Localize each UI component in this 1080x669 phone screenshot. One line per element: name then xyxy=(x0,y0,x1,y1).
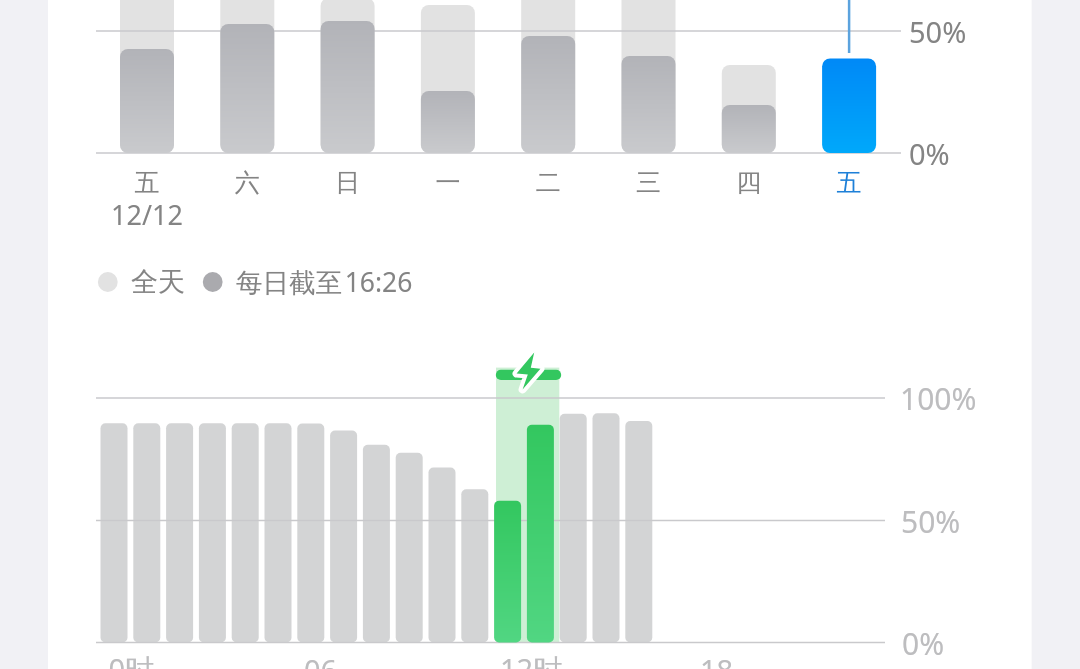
button[interactable]: 五 电量柱 xyxy=(104,0,190,232)
button[interactable]: 一 电量柱 xyxy=(405,0,491,232)
button[interactable]: 日 电量柱 xyxy=(305,0,391,232)
button[interactable]: 二 电量柱 xyxy=(505,0,591,232)
button[interactable]: 今日电量变化图表 xyxy=(90,340,890,650)
button[interactable]: 六 电量柱 xyxy=(204,0,290,232)
button[interactable]: 每日截至 16:26 xyxy=(199,262,425,304)
button[interactable]: 四 电量柱 xyxy=(706,0,792,232)
button[interactable]: 五 电量柱 xyxy=(806,0,892,232)
button[interactable]: 全天 xyxy=(94,262,198,304)
button[interactable]: 三 电量柱 xyxy=(606,0,692,232)
